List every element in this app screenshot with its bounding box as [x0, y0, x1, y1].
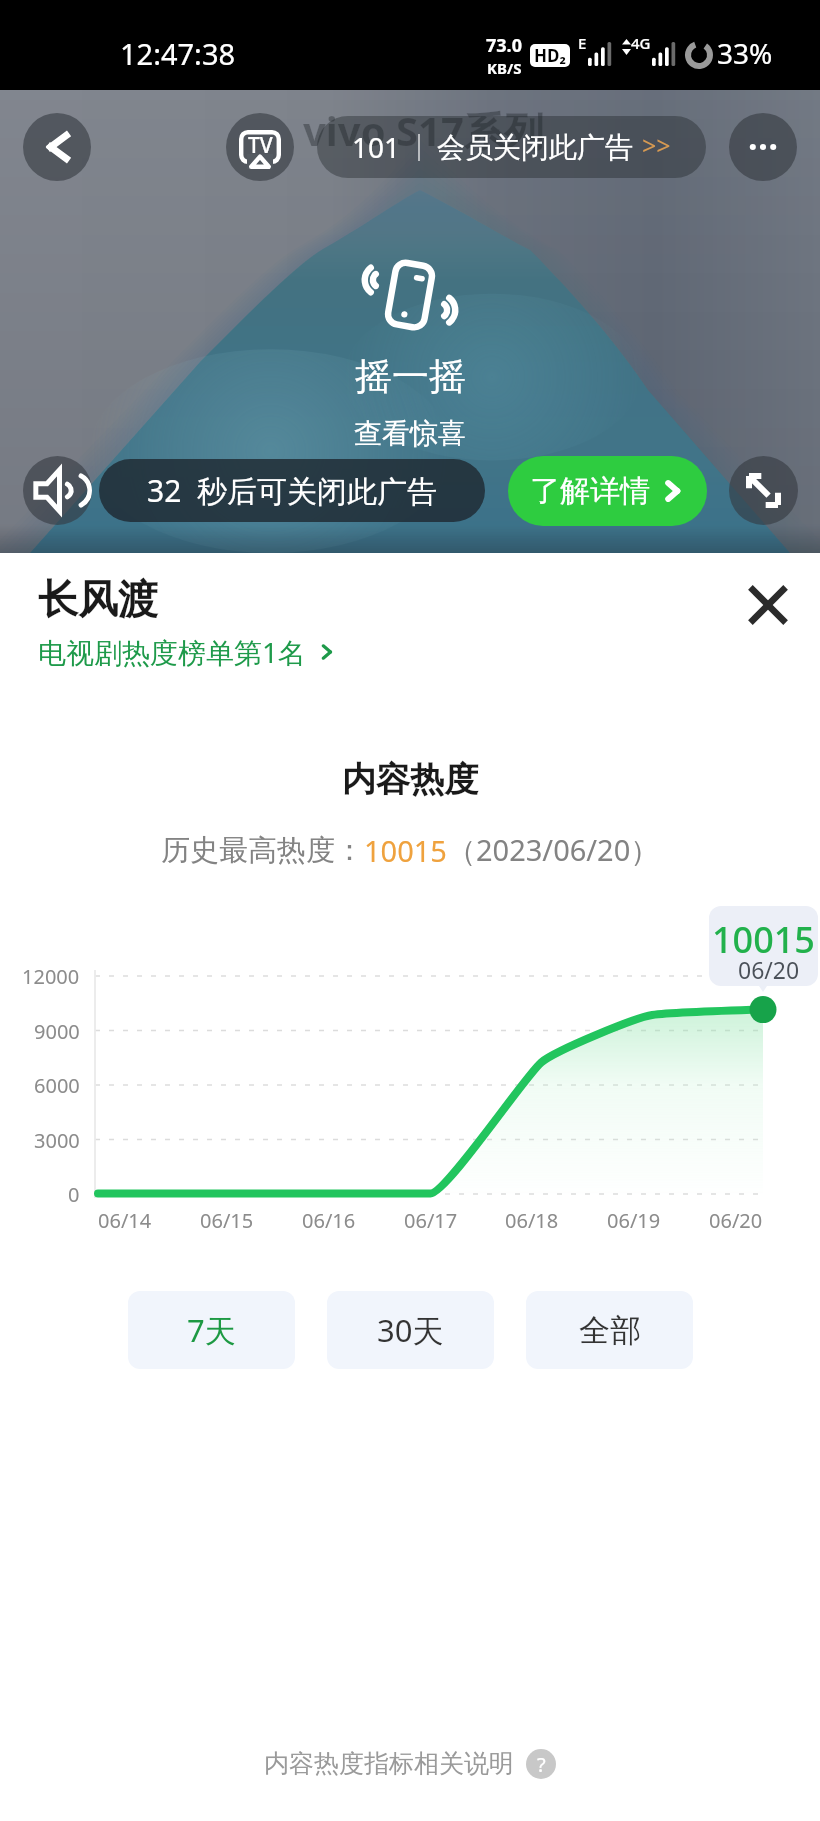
button[interactable]: 32 秒后可关闭此广告 [99, 459, 485, 522]
staticText: HD₂ [534, 44, 566, 67]
staticText: KB/S [487, 58, 522, 75]
staticText: 06/16 [302, 1207, 356, 1234]
staticText: 全部 [579, 1311, 641, 1350]
button[interactable]: 30天 [327, 1291, 494, 1369]
staticText: 06/17 [404, 1207, 458, 1234]
button[interactable]: 101 [317, 116, 706, 178]
staticText: 10015 [364, 831, 447, 870]
staticText: 73.0 [486, 33, 522, 58]
staticText: TV [248, 131, 273, 160]
staticText: 6000 [34, 1072, 80, 1099]
staticText: 内容热度指标相关说明 [264, 1748, 514, 1779]
button[interactable]: Mute [23, 456, 92, 525]
staticText: 3000 [34, 1127, 80, 1154]
button[interactable]: Back [23, 113, 91, 181]
staticText: vivo S17系列 [303, 103, 544, 158]
staticText: 内容热度 [342, 758, 478, 801]
staticText: 101 [352, 128, 401, 166]
staticText: 摇一摇 [355, 353, 466, 400]
staticText: 06/15 [200, 1207, 254, 1234]
staticText: 长风渡 [38, 574, 158, 624]
staticText: （2023/06/20） [447, 830, 660, 870]
staticText: 历史最高热度： [161, 832, 364, 869]
staticText: 06/18 [505, 1207, 559, 1234]
staticText: 查看惊喜 [354, 416, 466, 451]
button[interactable]: Close [730, 567, 806, 643]
staticText: E [578, 33, 587, 53]
staticText: 电视剧热度榜单第1名 [38, 633, 307, 671]
staticText: 06/19 [607, 1207, 661, 1234]
staticText: 30天 [377, 1309, 444, 1351]
staticText: 9000 [34, 1018, 80, 1045]
staticText: 0 [68, 1181, 80, 1208]
staticText: 33% [717, 34, 773, 72]
button[interactable]: Fullscreen [729, 456, 798, 525]
button[interactable]: 全部 [526, 1291, 693, 1369]
button[interactable]: 电视剧热度榜单第1名 [38, 633, 338, 671]
staticText: >> [642, 128, 671, 162]
staticText: 7天 [187, 1309, 236, 1351]
staticText: 06/20 [738, 954, 800, 985]
button[interactable]: More options [729, 113, 797, 181]
button[interactable]: 了解详情 [508, 456, 707, 526]
button[interactable]: 7天 [128, 1291, 295, 1369]
staticText: 32 秒后可关闭此广告 [147, 470, 437, 511]
staticText: 12:47:38 [120, 34, 236, 73]
staticText: 4G [631, 33, 651, 53]
staticText: 06/20 [709, 1207, 763, 1234]
button[interactable]: 内容热度指标相关说明 [264, 1748, 556, 1779]
button[interactable]: Cast to TV [226, 113, 294, 181]
staticText: 06/14 [98, 1207, 152, 1234]
staticText: 会员关闭此广告 [437, 130, 633, 165]
staticText: 10015 [712, 915, 815, 964]
staticText: 了解详情 [530, 472, 650, 510]
staticText: ? [537, 1751, 546, 1778]
staticText: 12000 [22, 963, 80, 990]
